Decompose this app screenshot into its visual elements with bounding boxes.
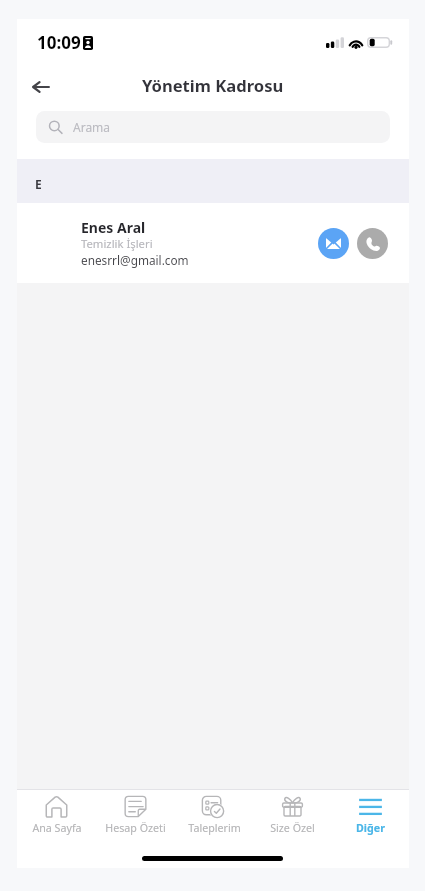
staticText: E (35, 176, 42, 192)
button[interactable]: Diğer (331, 790, 409, 868)
staticText: Yönetim Kadrosu (142, 74, 284, 97)
button[interactable]: Size Özel (253, 790, 331, 868)
staticText: enesrrl@gmail.com (81, 252, 189, 268)
button[interactable]: Hesap Özeti (96, 790, 175, 868)
button[interactable]: Send email (318, 228, 349, 259)
staticText: Diğer (356, 821, 385, 836)
button[interactable]: Taleplerim (175, 790, 253, 868)
staticText: Size Özel (270, 821, 315, 836)
button[interactable]: Enes Aral (17, 203, 409, 283)
staticText: Hesap Özeti (105, 821, 166, 836)
staticText: Temizlik İşleri (81, 236, 153, 251)
staticText: Arama (73, 119, 111, 135)
staticText: Taleplerim (188, 821, 241, 836)
staticText: Enes Aral (81, 218, 146, 237)
staticText: Ana Sayfa (32, 821, 82, 836)
button[interactable]: Call (357, 228, 388, 259)
button[interactable]: Arama (36, 111, 390, 143)
button[interactable]: Ana Sayfa (17, 790, 96, 868)
staticText: 10:09 (37, 31, 81, 54)
button[interactable]: Back (21, 67, 61, 107)
